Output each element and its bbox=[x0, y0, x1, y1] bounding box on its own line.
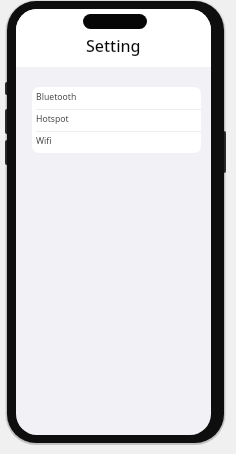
button[interactable]: Wifi bbox=[32, 131, 201, 153]
staticText: Setting bbox=[86, 35, 141, 57]
staticText: Wifi bbox=[36, 135, 52, 147]
staticText: Hotspot bbox=[36, 113, 69, 125]
button[interactable]: Bluetooth bbox=[32, 87, 201, 109]
button[interactable]: Hotspot bbox=[32, 109, 201, 131]
staticText: Bluetooth bbox=[36, 91, 77, 103]
